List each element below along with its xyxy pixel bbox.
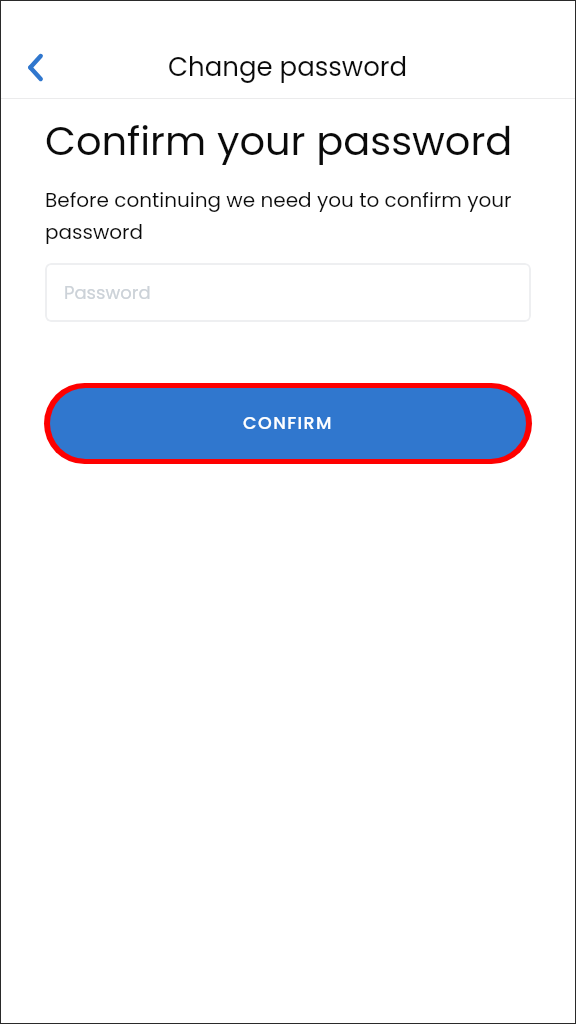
staticText: Confirm your password	[45, 113, 513, 169]
staticText: Change password	[168, 49, 408, 85]
button[interactable]: CONFIRM	[50, 388, 526, 459]
staticText: Password	[64, 280, 151, 305]
staticText: Before continuing we need you to confirm…	[45, 186, 536, 246]
button[interactable]: Password	[45, 263, 531, 322]
staticText: CONFIRM	[243, 411, 333, 436]
button[interactable]: Navigate back	[13, 45, 58, 90]
